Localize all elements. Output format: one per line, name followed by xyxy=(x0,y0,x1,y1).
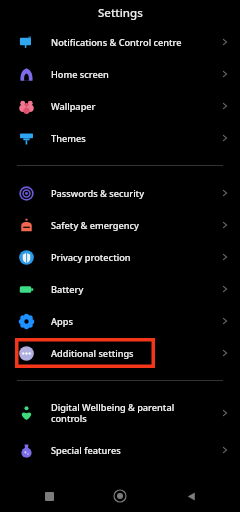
staticText: Privacy protection xyxy=(51,251,217,264)
staticText: Apps xyxy=(51,315,217,328)
staticText: Notifications & Control centre xyxy=(51,36,217,49)
button[interactable]: Themes xyxy=(0,122,240,154)
button[interactable]: Back xyxy=(178,483,204,509)
staticText: Battery xyxy=(51,283,217,296)
button[interactable]: Special features xyxy=(0,434,240,466)
staticText: Safety & emergency xyxy=(51,219,217,232)
staticText: Settings xyxy=(98,5,143,21)
staticText: Passwords & security xyxy=(51,187,217,200)
button[interactable]: Home xyxy=(107,483,133,509)
button[interactable]: Home screen xyxy=(0,58,240,90)
staticText: Additional settings xyxy=(51,347,217,360)
button[interactable]: Digital Wellbeing & parental controls xyxy=(0,392,240,434)
staticText: Digital Wellbeing & parental controls xyxy=(51,401,217,425)
button[interactable]: Notifications & Control centre xyxy=(0,26,240,58)
button[interactable]: Passwords & security xyxy=(0,177,240,209)
staticText: Home screen xyxy=(51,68,217,81)
button[interactable]: Battery xyxy=(0,273,240,305)
staticText: Themes xyxy=(51,132,217,145)
staticText: Wallpaper xyxy=(51,100,217,113)
button[interactable]: Wallpaper xyxy=(0,90,240,122)
button[interactable]: Recent apps xyxy=(36,483,62,509)
button[interactable]: Privacy protection xyxy=(0,241,240,273)
button[interactable]: Additional settings xyxy=(0,337,240,369)
button[interactable]: Apps xyxy=(0,305,240,337)
staticText: Special features xyxy=(51,444,217,457)
button[interactable]: Safety & emergency xyxy=(0,209,240,241)
